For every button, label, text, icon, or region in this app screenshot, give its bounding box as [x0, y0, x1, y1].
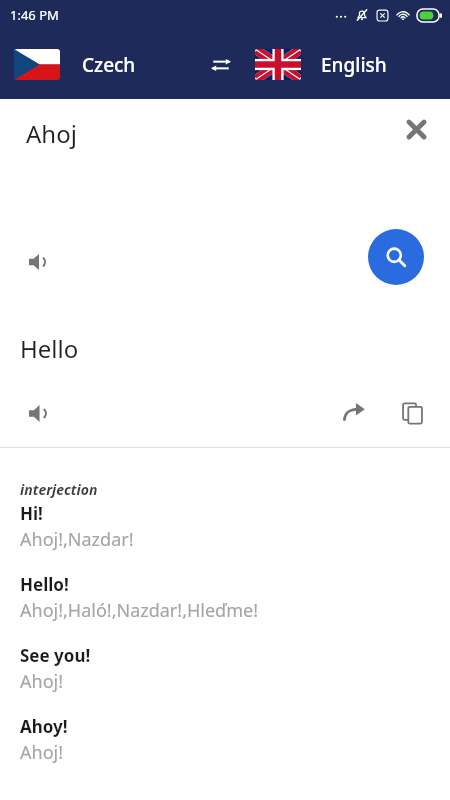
staticText: interjection: [20, 480, 98, 499]
button[interactable]: Swap languages: [197, 41, 245, 89]
staticText: Czech: [82, 52, 136, 78]
staticText: Ahoj!: [20, 740, 64, 765]
button[interactable]: Hello!: [20, 573, 438, 623]
staticText: Ahoj!,Haló!,Nazdar!,Hleďme!: [20, 598, 258, 623]
staticText: English: [321, 52, 387, 78]
staticText: Hello: [20, 332, 79, 365]
button[interactable]: Hi!: [20, 502, 438, 552]
button[interactable]: English: [245, 30, 442, 99]
staticText: Hi!: [20, 502, 43, 525]
button[interactable]: Share: [330, 389, 378, 437]
button[interactable]: See you!: [20, 644, 438, 694]
button[interactable]: Speak translation: [14, 389, 62, 437]
button[interactable]: Ahoy!: [20, 715, 438, 765]
staticText: Ahoj!,Nazdar!: [20, 527, 134, 552]
staticText: Ahoj!: [20, 669, 64, 694]
staticText: See you!: [20, 644, 91, 667]
staticText: Ahoj: [26, 117, 77, 150]
button[interactable]: Search translation: [368, 229, 424, 285]
button[interactable]: Speak source text: [14, 238, 62, 286]
button[interactable]: Copy: [388, 389, 436, 437]
button[interactable]: Czech: [0, 30, 197, 99]
button[interactable]: Clear text: [394, 107, 438, 151]
staticText: Ahoy!: [20, 715, 68, 738]
staticText: Hello!: [20, 573, 69, 596]
staticText: 1:46 PM: [10, 6, 59, 24]
